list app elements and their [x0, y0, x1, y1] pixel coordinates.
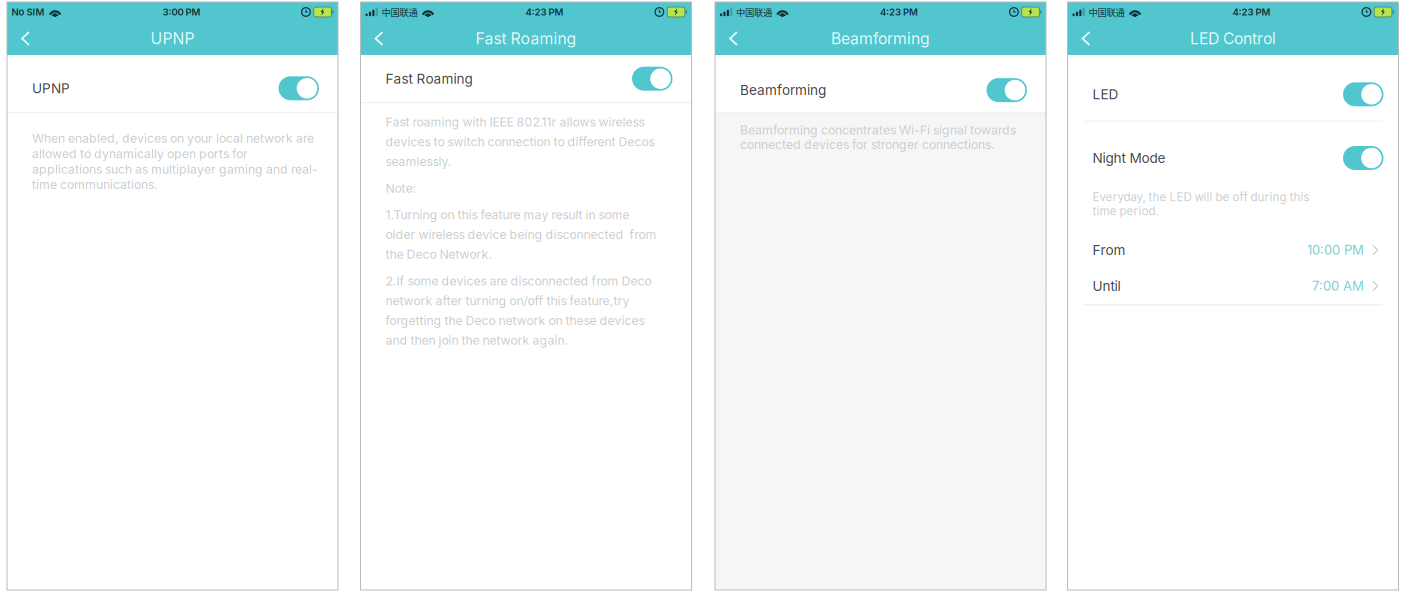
- staticText: Note:: [385, 181, 416, 196]
- button[interactable]: Toggle switch: [1343, 146, 1383, 170]
- staticText: and then join the network again.: [385, 333, 568, 348]
- staticText: Beamforming concentrates Wi-Fi signal to…: [740, 122, 1016, 137]
- button[interactable]: Until: [1067, 268, 1398, 304]
- staticText: 中国联通: [1088, 5, 1124, 19]
- button[interactable]: Back: [360, 22, 397, 55]
- staticText: 10:00 PM: [1307, 242, 1364, 258]
- staticText: allowed to dynamically open ports for: [32, 146, 248, 161]
- staticText: 中国联通: [736, 5, 772, 19]
- staticText: time communications.: [32, 177, 158, 192]
- staticText: 4:23 PM: [526, 6, 564, 18]
- button[interactable]: Toggle switch: [986, 78, 1027, 102]
- staticText: the Deco Network.: [385, 247, 492, 262]
- staticText: Night Mode: [1092, 150, 1165, 166]
- staticText: Beamforming: [831, 29, 930, 48]
- button[interactable]: Back: [7, 22, 44, 55]
- staticText: No SIM: [11, 6, 44, 18]
- button[interactable]: Back: [1067, 22, 1104, 55]
- staticText: connected devices for stronger connectio…: [740, 137, 995, 152]
- staticText: 2.If some devices are disconnected from …: [385, 274, 651, 288]
- button[interactable]: Toggle switch: [632, 67, 672, 91]
- staticText: Beamforming: [740, 82, 826, 98]
- staticText: applications such as multiplayer gaming …: [32, 162, 318, 177]
- staticText: Fast Roaming: [385, 70, 472, 87]
- button[interactable]: Beamforming: [715, 55, 1046, 113]
- staticText: 中国联通: [381, 5, 417, 19]
- staticText: UPNP: [150, 29, 194, 48]
- staticText: LED: [1092, 86, 1118, 103]
- staticText: 7:00 AM: [1312, 278, 1364, 294]
- staticText: 1.Turning on this feature may result in …: [385, 207, 629, 222]
- staticText: 4:23 PM: [880, 6, 918, 18]
- staticText: Everyday, the LED will be off during thi…: [1092, 190, 1309, 204]
- staticText: time period.: [1092, 204, 1158, 218]
- staticText: forgetting the Deco network on these dev…: [385, 313, 644, 328]
- staticText: Fast Roaming: [475, 29, 576, 48]
- staticText: LED Control: [1190, 29, 1276, 48]
- staticText: When enabled, devices on your local netw…: [32, 131, 314, 146]
- staticText: From: [1092, 242, 1125, 258]
- button[interactable]: Night Mode: [1067, 122, 1398, 190]
- staticText: Until: [1092, 278, 1120, 294]
- staticText: network after turning on/off this featur…: [385, 293, 629, 308]
- staticText: devices to switch connection to differen…: [385, 134, 654, 149]
- staticText: older wireless device being disconnected…: [385, 227, 656, 242]
- button[interactable]: Toggle switch: [1343, 82, 1383, 106]
- staticText: UPNP: [32, 80, 70, 97]
- staticText: 4:23 PM: [1233, 6, 1271, 18]
- button[interactable]: Toggle switch: [278, 76, 319, 100]
- staticText: seamlessly.: [385, 154, 451, 169]
- staticText: Fast roaming with IEEE 802.11r allows wi…: [385, 115, 644, 129]
- button[interactable]: From: [1067, 233, 1398, 268]
- staticText: 3:00 PM: [162, 6, 200, 18]
- button[interactable]: Back: [715, 22, 752, 55]
- button[interactable]: UPNP: [7, 55, 338, 112]
- button[interactable]: LED: [1067, 55, 1398, 121]
- button[interactable]: Fast Roaming: [360, 55, 691, 102]
